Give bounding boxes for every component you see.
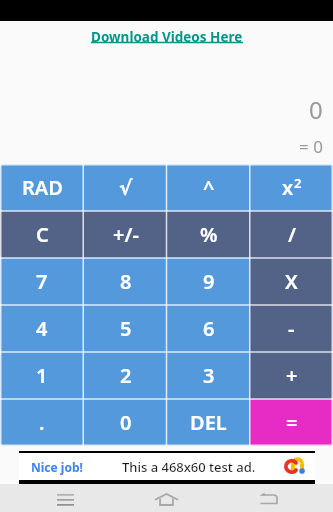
button[interactable]: 7: [0, 258, 84, 305]
staticText: +: [286, 362, 298, 389]
staticText: X: [285, 268, 298, 295]
button[interactable]: %: [167, 211, 250, 258]
staticText: √: [119, 176, 133, 199]
staticText: x: [282, 174, 294, 201]
button[interactable]: Home: [146, 485, 187, 512]
button[interactable]: +: [250, 352, 333, 399]
button[interactable]: .: [0, 399, 84, 446]
staticText: Nice job!: [31, 459, 83, 475]
staticText: 3: [203, 362, 215, 389]
other: Ad: [284, 459, 303, 474]
staticText: 0: [120, 409, 132, 436]
button[interactable]: +/-: [84, 211, 167, 258]
button[interactable]: x: [250, 164, 333, 211]
staticText: 2: [120, 362, 132, 389]
button[interactable]: Nice job!: [19, 451, 315, 484]
staticText: 4: [36, 315, 48, 342]
staticText: ^: [203, 174, 215, 201]
staticText: %: [200, 221, 218, 248]
staticText: This a 468x60 test ad.: [122, 458, 256, 476]
button[interactable]: X: [250, 258, 333, 305]
button[interactable]: 5: [84, 305, 167, 352]
staticText: DEL: [190, 409, 227, 436]
staticText: .: [39, 409, 45, 436]
button[interactable]: =: [250, 399, 333, 446]
button[interactable]: -: [250, 305, 333, 352]
button[interactable]: RAD: [0, 164, 84, 211]
button[interactable]: Recent apps: [45, 485, 86, 512]
staticText: 1: [36, 362, 48, 389]
button[interactable]: /: [250, 211, 333, 258]
staticText: 9: [203, 268, 215, 295]
staticText: =: [286, 409, 298, 436]
staticText: +/-: [113, 221, 139, 248]
button[interactable]: 4: [0, 305, 84, 352]
button[interactable]: Download Videos Here: [91, 28, 243, 46]
button[interactable]: 9: [167, 258, 250, 305]
button[interactable]: √: [84, 164, 167, 211]
button[interactable]: Back: [247, 485, 288, 512]
button[interactable]: ^: [167, 164, 250, 211]
staticText: = 0: [299, 135, 323, 158]
staticText: C: [36, 221, 49, 248]
button[interactable]: 1: [0, 352, 84, 399]
staticText: 7: [36, 268, 48, 295]
staticText: 0: [309, 93, 323, 126]
button[interactable]: DEL: [167, 399, 250, 446]
button[interactable]: 2: [84, 352, 167, 399]
staticText: -: [288, 315, 295, 342]
staticText: RAD: [22, 174, 63, 201]
staticText: 5: [120, 315, 132, 342]
staticText: 2: [294, 174, 302, 192]
staticText: 6: [203, 315, 215, 342]
staticText: /: [288, 221, 296, 248]
staticText: 8: [120, 268, 132, 295]
button[interactable]: C: [0, 211, 84, 258]
button[interactable]: 6: [167, 305, 250, 352]
button[interactable]: 0: [84, 399, 167, 446]
button[interactable]: 8: [84, 258, 167, 305]
button[interactable]: 3: [167, 352, 250, 399]
